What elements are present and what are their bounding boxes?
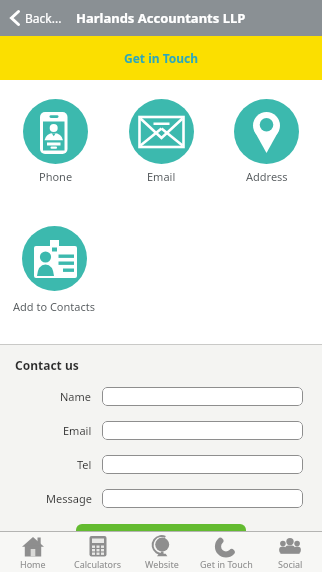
button[interactable]: Social — [258, 532, 322, 572]
staticText: Back... — [25, 10, 62, 26]
staticText: Home — [20, 558, 46, 570]
button[interactable]: Home — [0, 532, 65, 572]
staticText: Get in Touch — [124, 50, 199, 66]
button[interactable]: Calculators — [65, 532, 130, 572]
staticText: Website — [145, 558, 179, 570]
staticText: Email — [63, 423, 92, 438]
staticText: Calculators — [74, 558, 122, 570]
button[interactable]: Phone — [23, 99, 88, 184]
staticText: Harlands Accountants LLP — [76, 9, 246, 27]
staticText: Name — [60, 389, 92, 404]
button[interactable]: Add to Contacts — [0, 226, 108, 314]
button[interactable]: Get in Touch — [194, 532, 258, 572]
staticText: Phone — [39, 169, 73, 184]
staticText: Message — [46, 491, 92, 506]
button[interactable]: Back... — [9, 10, 62, 26]
button[interactable] — [102, 421, 303, 440]
button[interactable] — [102, 387, 303, 406]
staticText: Contact us — [15, 357, 79, 373]
staticText: Get in Touch — [200, 558, 253, 570]
button[interactable]: Website — [130, 532, 194, 572]
button[interactable] — [76, 524, 246, 554]
button[interactable]: Email — [129, 99, 194, 184]
button[interactable]: Get in Touch — [0, 36, 322, 80]
button[interactable]: Address — [234, 99, 299, 184]
staticText: Address — [246, 169, 288, 184]
staticText: Social — [278, 558, 303, 570]
button[interactable] — [102, 455, 303, 474]
staticText: Email — [147, 169, 176, 184]
button[interactable] — [102, 489, 303, 508]
staticText: Add to Contacts — [13, 299, 95, 314]
staticText: Tel — [77, 457, 92, 472]
